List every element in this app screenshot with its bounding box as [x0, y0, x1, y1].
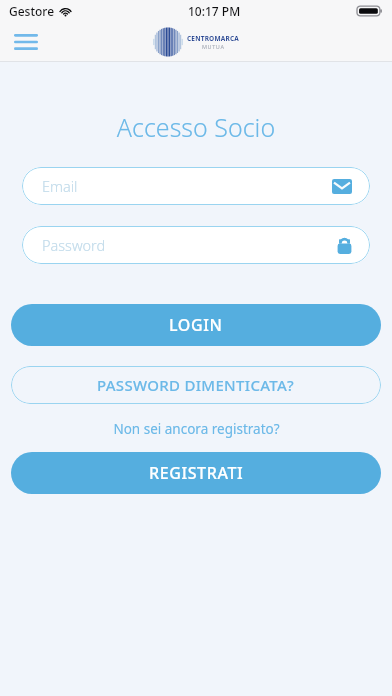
- staticText: Email: [42, 176, 78, 196]
- button[interactable]: PASSWORD DIMENTICATA?: [11, 366, 381, 404]
- staticText: Accesso Socio: [0, 110, 392, 144]
- button[interactable]: Password: [22, 226, 370, 264]
- staticText: Password: [42, 235, 106, 255]
- staticText: MUTUA: [202, 43, 225, 50]
- button[interactable]: REGISTRATI: [11, 452, 381, 494]
- button[interactable]: Non sei ancora registrato?: [0, 417, 392, 441]
- button[interactable]: Menu: [8, 24, 44, 60]
- staticText: PASSWORD DIMENTICATA?: [97, 375, 295, 395]
- staticText: 10:17 PM: [188, 3, 241, 19]
- staticText: CENTROMARCA: [187, 34, 240, 43]
- button[interactable]: LOGIN: [11, 304, 381, 346]
- staticText: LOGIN: [169, 314, 223, 336]
- staticText: Non sei ancora registrato?: [113, 420, 280, 438]
- staticText: REGISTRATI: [149, 462, 244, 484]
- staticText: Gestore: [9, 3, 55, 19]
- button[interactable]: Email: [22, 167, 370, 205]
